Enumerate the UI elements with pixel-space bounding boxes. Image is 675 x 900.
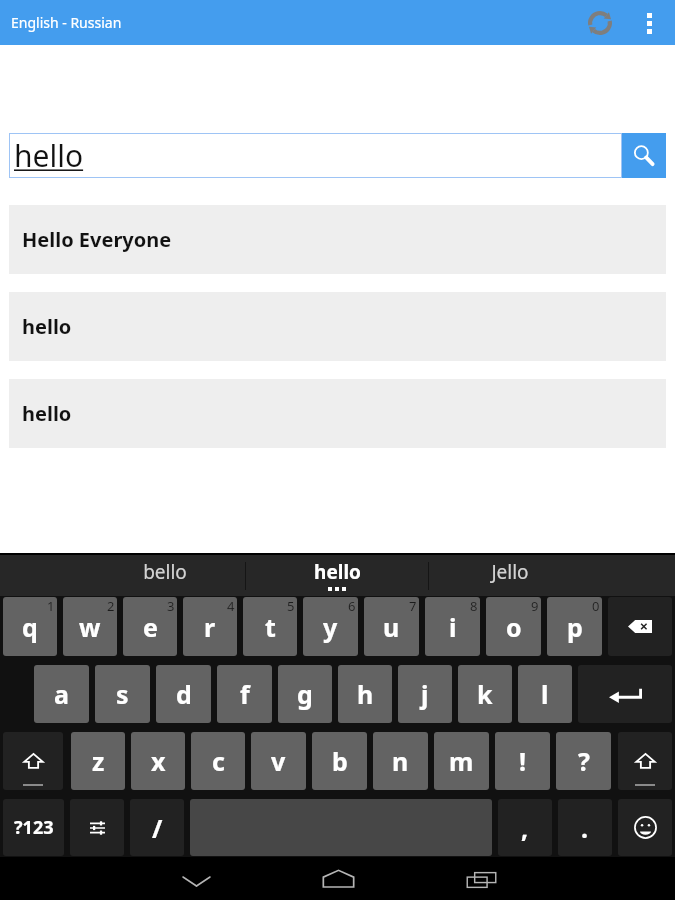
staticText: hello: [22, 313, 72, 340]
staticText: n: [392, 744, 409, 778]
staticText: w: [79, 610, 101, 644]
button[interactable]: Home: [310, 857, 366, 900]
staticText: e: [143, 610, 158, 644]
staticText: ,: [521, 811, 529, 845]
button[interactable]: x: [131, 732, 185, 790]
staticText: ?123: [14, 815, 54, 840]
button[interactable]: h: [338, 665, 392, 723]
staticText: s: [116, 677, 129, 711]
button[interactable]: m: [434, 732, 489, 790]
button[interactable]: f: [217, 665, 272, 723]
button[interactable]: hello: [9, 133, 622, 178]
button[interactable]: hello: [250, 555, 424, 596]
staticText: m: [449, 744, 474, 778]
button[interactable]: s: [95, 665, 150, 723]
staticText: /: [152, 811, 163, 845]
staticText: 8: [470, 597, 478, 615]
button[interactable]: e: [123, 597, 177, 656]
button[interactable]: Jello: [437, 555, 582, 596]
staticText: 5: [287, 597, 295, 615]
staticText: Jello: [491, 559, 529, 585]
staticText: hello: [14, 135, 84, 176]
button[interactable]: y: [303, 597, 358, 656]
staticText: o: [506, 610, 522, 644]
button[interactable]: Keyboard settings: [70, 799, 124, 856]
button[interactable]: ?: [556, 732, 611, 790]
staticText: y: [323, 610, 338, 644]
button[interactable]: bello: [92, 555, 237, 596]
button[interactable]: t: [243, 597, 297, 656]
staticText: hello: [22, 400, 72, 427]
staticText: 4: [227, 597, 235, 615]
button[interactable]: ?123: [3, 799, 64, 856]
staticText: 6: [348, 597, 356, 615]
staticText: u: [383, 610, 400, 644]
button[interactable]: Back: [168, 857, 224, 900]
staticText: 7: [409, 597, 417, 615]
button[interactable]: Hello Everyone: [9, 205, 666, 274]
staticText: bello: [143, 559, 187, 585]
button[interactable]: Backspace: [608, 597, 672, 656]
staticText: q: [22, 610, 38, 644]
button[interactable]: hello: [9, 379, 666, 448]
staticText: i: [449, 610, 457, 644]
button[interactable]: !: [495, 732, 550, 790]
button[interactable]: Shift: [3, 732, 63, 790]
button[interactable]: Shift: [618, 732, 672, 790]
button[interactable]: i: [425, 597, 480, 656]
staticText: English - Russian: [11, 13, 122, 32]
button[interactable]: a: [34, 665, 89, 723]
button[interactable]: n: [373, 732, 428, 790]
staticText: 1: [47, 597, 55, 615]
staticText: d: [176, 677, 192, 711]
staticText: hello: [314, 559, 361, 585]
staticText: j: [421, 677, 429, 711]
button[interactable]: v: [251, 732, 306, 790]
button[interactable]: .: [558, 799, 612, 856]
button[interactable]: Search: [622, 133, 666, 178]
staticText: l: [541, 677, 549, 711]
button[interactable]: o: [486, 597, 541, 656]
button[interactable]: Emoji: [618, 799, 672, 856]
staticText: 2: [107, 597, 115, 615]
button[interactable]: /: [130, 799, 184, 856]
button[interactable]: More options: [631, 5, 667, 41]
button[interactable]: r: [183, 597, 237, 656]
button[interactable]: Swap languages: [578, 1, 622, 45]
staticText: 3: [167, 597, 175, 615]
button[interactable]: l: [518, 665, 572, 723]
staticText: 9: [531, 597, 539, 615]
staticText: t: [265, 610, 276, 644]
button[interactable]: w: [63, 597, 117, 656]
button[interactable]: k: [458, 665, 512, 723]
button[interactable]: c: [191, 732, 245, 790]
staticText: k: [477, 677, 493, 711]
button[interactable]: ,: [498, 799, 552, 856]
button[interactable]: d: [156, 665, 211, 723]
button[interactable]: b: [312, 732, 367, 790]
button[interactable]: u: [364, 597, 419, 656]
button[interactable]: j: [398, 665, 452, 723]
staticText: a: [54, 677, 69, 711]
button[interactable]: p: [547, 597, 602, 656]
button[interactable]: Recents: [453, 857, 509, 900]
staticText: f: [240, 677, 250, 711]
staticText: !: [519, 744, 527, 778]
staticText: g: [297, 677, 313, 711]
button[interactable]: z: [71, 732, 125, 790]
staticText: r: [204, 610, 216, 644]
staticText: z: [92, 744, 105, 778]
button[interactable]: Enter: [578, 665, 672, 723]
button[interactable]: q: [3, 597, 57, 656]
staticText: ?: [578, 744, 590, 778]
staticText: v: [271, 744, 286, 778]
staticText: b: [332, 744, 348, 778]
staticText: c: [212, 744, 225, 778]
button[interactable]: g: [278, 665, 332, 723]
staticText: 0: [592, 597, 600, 615]
staticText: p: [567, 610, 583, 644]
staticText: .: [581, 811, 589, 845]
button[interactable]: hello: [9, 292, 666, 361]
staticText: x: [151, 744, 166, 778]
